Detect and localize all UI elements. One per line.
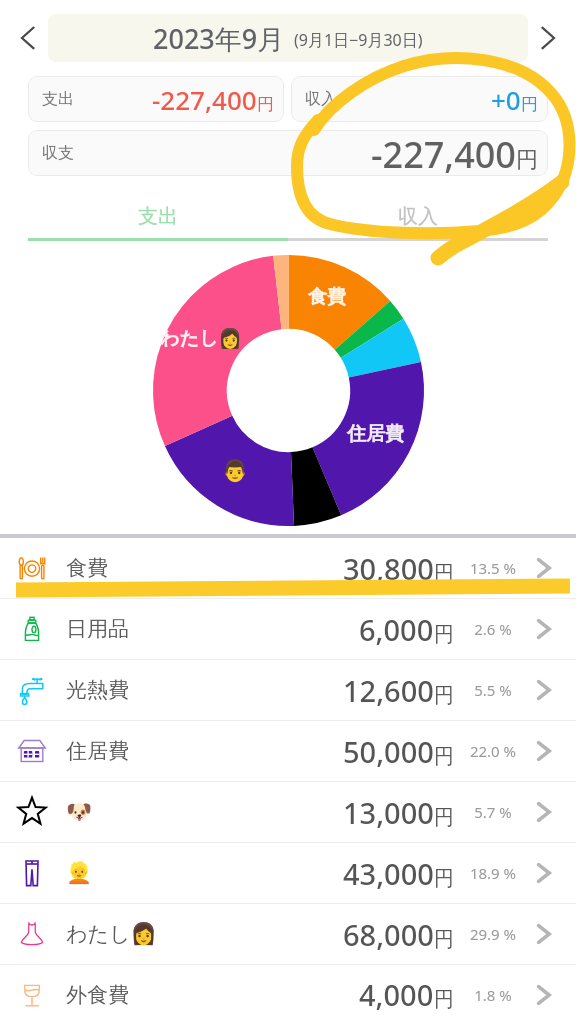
staticText: 円	[434, 805, 454, 830]
button[interactable]: Previous month	[8, 18, 48, 58]
button[interactable]: Next month	[528, 18, 568, 58]
staticText: 5.7 %	[454, 802, 532, 822]
staticText: 支出	[138, 204, 178, 229]
button[interactable]: 👱	[0, 843, 576, 903]
staticText: わたし👩	[160, 327, 242, 351]
staticText: 29.9 %	[454, 924, 532, 944]
staticText: 13.5 %	[454, 558, 532, 578]
staticText: 43,000	[343, 854, 434, 893]
staticText: 4,000	[359, 975, 434, 1014]
button[interactable]: 住居費	[0, 721, 576, 781]
staticText: 円	[516, 146, 538, 174]
staticText: 🐶	[66, 800, 93, 825]
staticText: 収入	[398, 204, 438, 229]
button[interactable]: 光熱費	[0, 660, 576, 720]
staticText: 円	[434, 927, 454, 952]
staticText: 収支	[42, 143, 74, 163]
staticText: 円	[434, 987, 454, 1012]
staticText: 外食費	[66, 982, 129, 1008]
staticText: 支出	[42, 89, 74, 109]
button[interactable]: 収入	[288, 194, 548, 238]
staticText: 13,000	[343, 793, 434, 832]
staticText: 食費	[308, 285, 346, 309]
staticText: 6,000	[359, 610, 434, 649]
staticText: 日用品	[66, 616, 129, 642]
staticText: 30,800	[343, 549, 434, 588]
staticText: 68,000	[343, 915, 434, 954]
button[interactable]: 日用品	[0, 599, 576, 659]
staticText: 円	[521, 94, 538, 115]
staticText: 住居費	[66, 738, 129, 764]
staticText: 👱	[66, 861, 93, 886]
staticText: 2023年9月	[153, 20, 285, 57]
button[interactable]: 収支	[28, 130, 548, 176]
staticText: 5.5 %	[454, 680, 532, 700]
staticText: 光熱費	[66, 677, 129, 703]
staticText: +0	[491, 82, 521, 117]
staticText: 食費	[66, 555, 108, 581]
staticText: -227,400	[371, 130, 516, 176]
staticText: 2.6 %	[454, 619, 532, 639]
button[interactable]: 支出	[28, 76, 284, 122]
button[interactable]: 2023年9月	[48, 14, 528, 62]
button[interactable]: 収入	[291, 76, 548, 122]
staticText: 円	[434, 744, 454, 769]
staticText: 住居費	[347, 422, 404, 446]
staticText: -227,400	[152, 82, 257, 117]
staticText: 円	[434, 622, 454, 647]
button[interactable]: 食費	[0, 538, 576, 598]
staticText: 円	[257, 94, 274, 115]
button[interactable]: 支出	[28, 194, 288, 238]
staticText: 👨	[222, 459, 249, 484]
staticText: 円	[434, 561, 454, 586]
staticText: 18.9 %	[454, 863, 532, 883]
staticText: 1.8 %	[454, 985, 532, 1005]
button[interactable]: わたし👩	[0, 904, 576, 964]
staticText: わたし👩	[66, 921, 157, 947]
staticText: 12,600	[343, 671, 434, 710]
staticText: 収入	[305, 89, 337, 109]
button[interactable]: 外食費	[0, 965, 576, 1024]
staticText: 円	[434, 683, 454, 708]
staticText: 円	[434, 866, 454, 891]
staticText: (9月1日−9月30日)	[294, 29, 423, 51]
button[interactable]: 🐶	[0, 782, 576, 842]
staticText: 22.0 %	[454, 741, 532, 761]
staticText: 50,000	[343, 732, 434, 771]
